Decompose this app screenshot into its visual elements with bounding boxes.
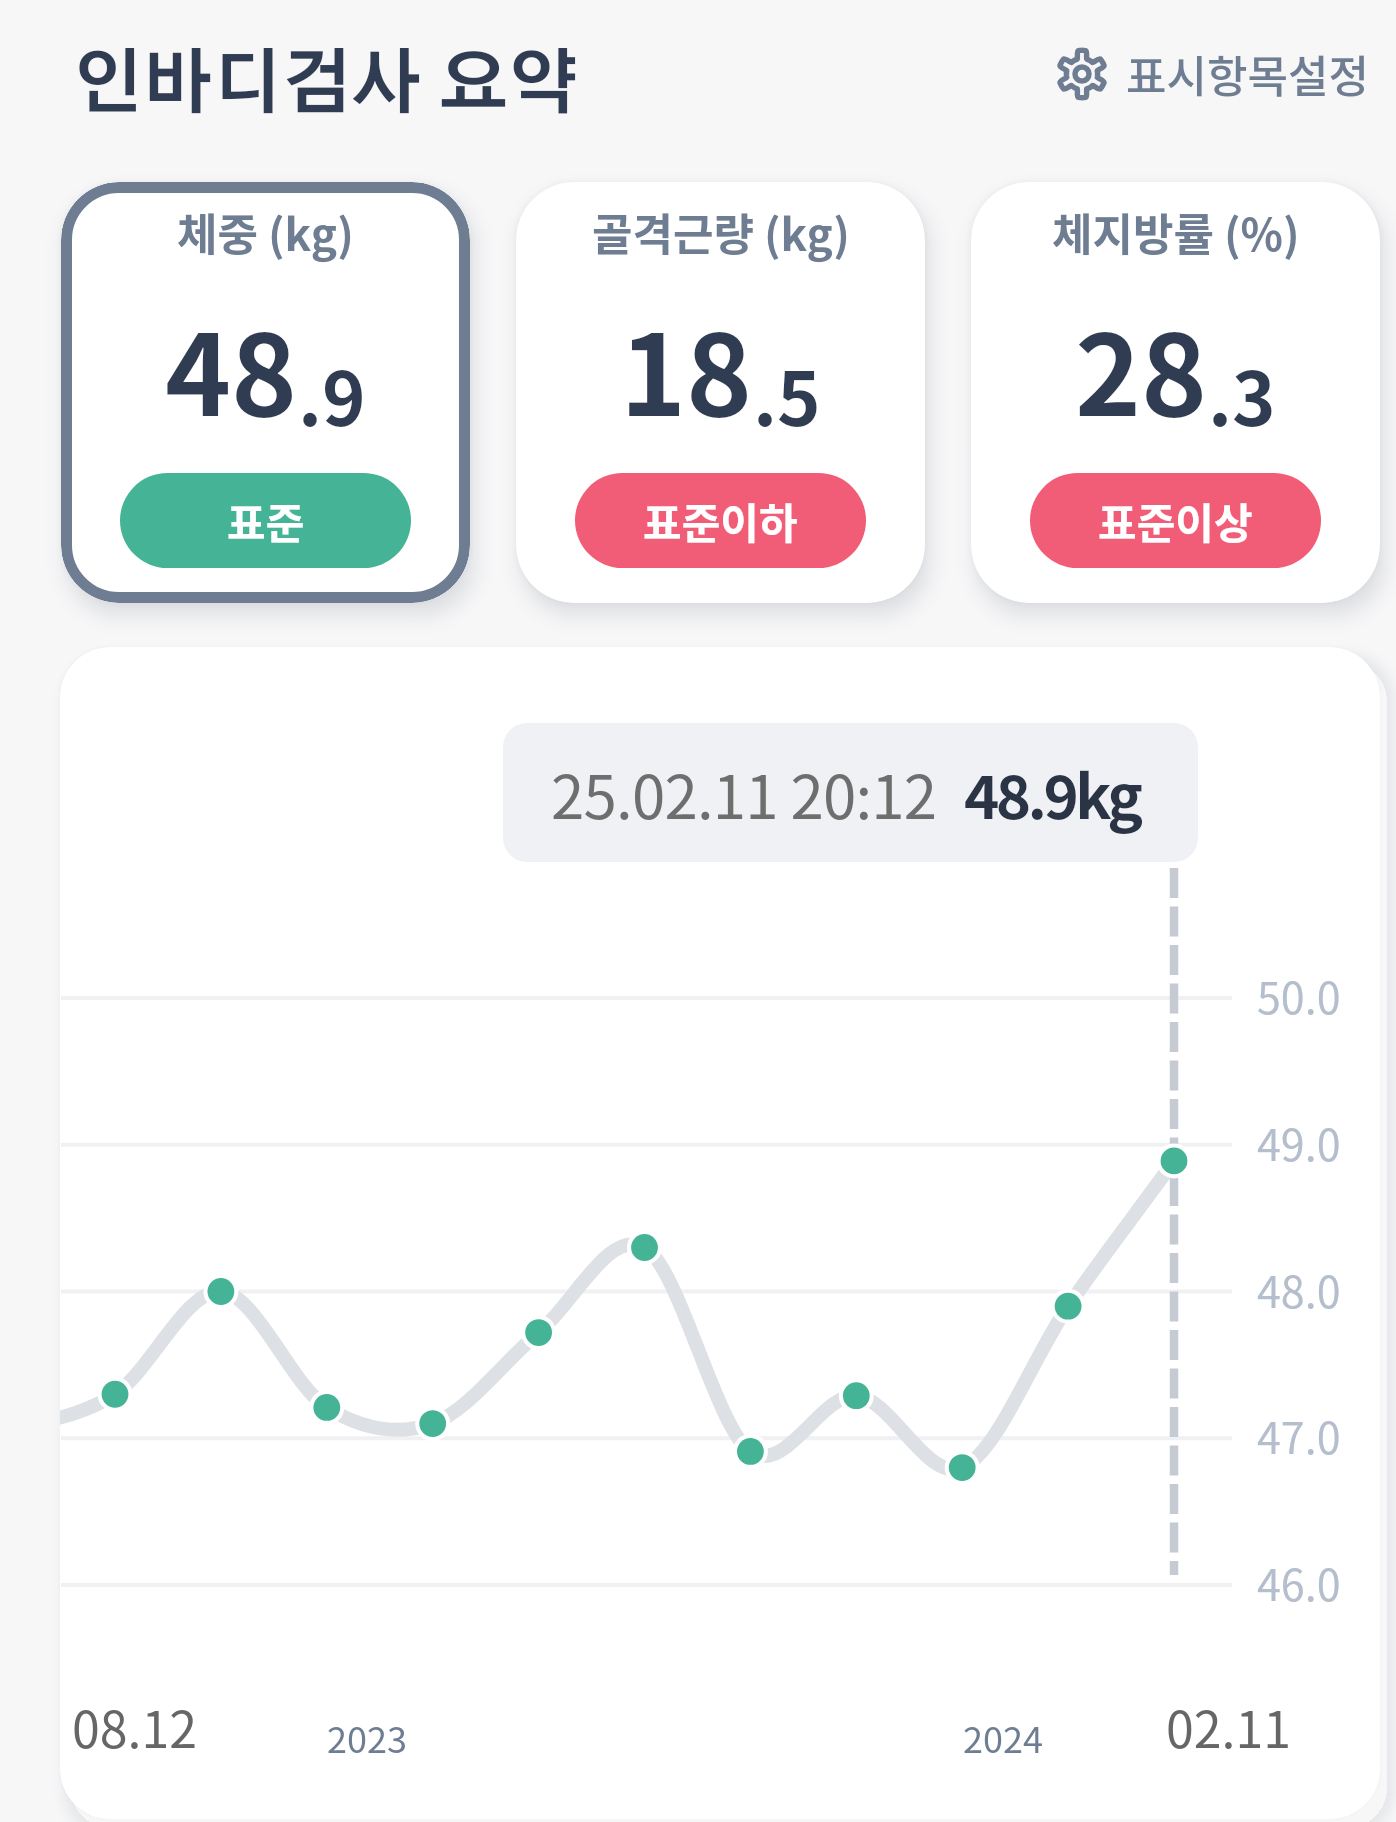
staticText: 48 xyxy=(165,286,298,448)
staticText: 25.02.11 20:12 xyxy=(551,749,937,836)
staticText: .3 xyxy=(1208,340,1276,447)
button[interactable]: 체중 (kg) xyxy=(61,182,470,603)
button[interactable]: 표시항목설정 xyxy=(1050,34,1375,114)
button[interactable]: 46.0 xyxy=(60,647,1380,1819)
button[interactable]: 체지방률 (%) xyxy=(971,182,1380,603)
staticText: 18 xyxy=(620,286,753,448)
button[interactable]: 25.02.11 20:12 xyxy=(503,723,1198,862)
staticText: 표준이하 xyxy=(643,490,798,551)
button[interactable]: 골격근량 (kg) xyxy=(516,182,925,603)
staticText: 49.0 xyxy=(1257,1111,1341,1173)
staticText: .9 xyxy=(298,340,366,447)
staticText: 2023 xyxy=(327,1711,407,1763)
button[interactable]: 표준이하 xyxy=(575,473,866,568)
staticText: 체중 (kg) xyxy=(177,200,354,264)
staticText: 50.0 xyxy=(1257,964,1341,1026)
staticText: 47.0 xyxy=(1257,1404,1341,1466)
staticText: 2024 xyxy=(963,1711,1043,1763)
staticText: 골격근량 (kg) xyxy=(592,200,850,264)
staticText: 28 xyxy=(1075,286,1208,448)
staticText: .5 xyxy=(753,340,821,447)
staticText: 표시항목설정 xyxy=(1126,42,1369,106)
staticText: 인바디검사 요약 xyxy=(73,51,579,121)
staticText: 46.0 xyxy=(1257,1551,1341,1613)
staticText: 02.11 xyxy=(1166,1690,1291,1762)
staticText: 체지방률 (%) xyxy=(1052,200,1300,264)
staticText: 48.0 xyxy=(1257,1258,1341,1320)
staticText: 48.9kg xyxy=(964,749,1140,836)
other: 표시항목설정 xyxy=(1056,48,1108,100)
staticText: 08.12 xyxy=(72,1690,197,1762)
button[interactable]: 표준 xyxy=(120,473,411,568)
button[interactable]: 표준이상 xyxy=(1030,473,1321,568)
staticText: 표준 xyxy=(227,490,305,551)
staticText: 표준이상 xyxy=(1098,490,1253,551)
